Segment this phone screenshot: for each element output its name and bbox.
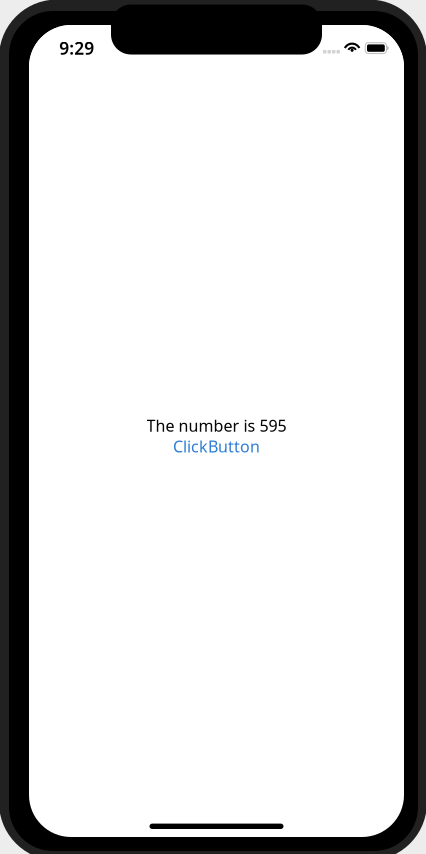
button[interactable]: ClickButton [173,436,260,457]
staticText: The number is 595 [146,415,286,436]
staticText: ClickButton [173,436,260,457]
staticText: 9:29 [59,36,94,59]
